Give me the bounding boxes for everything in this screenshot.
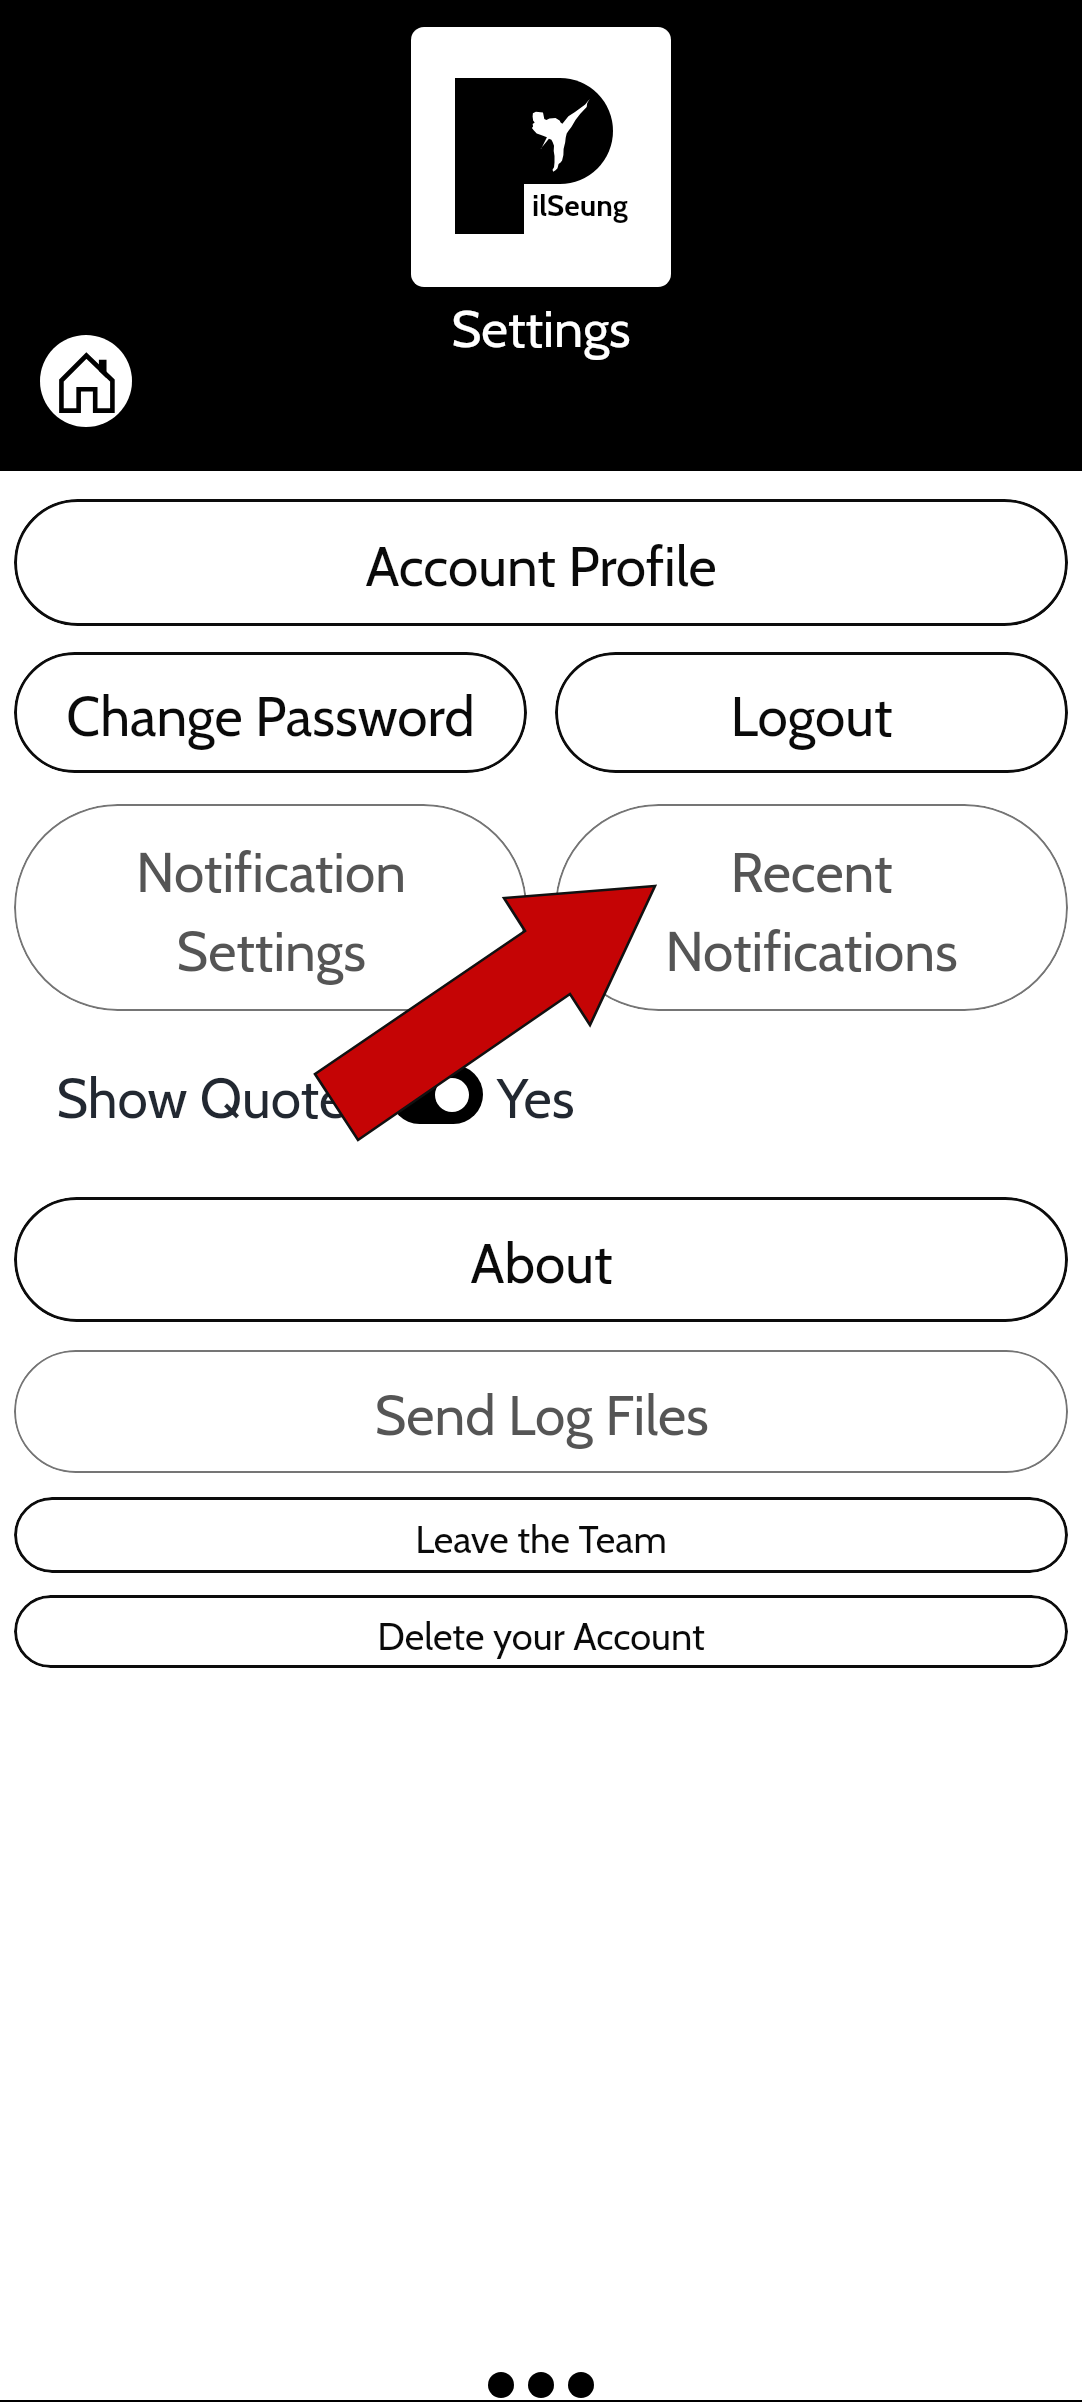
staticText: Change Password xyxy=(66,683,475,750)
staticText: Recent Notifications xyxy=(665,839,958,985)
staticText: Settings xyxy=(451,297,631,360)
staticText: Logout xyxy=(730,683,893,750)
button[interactable]: Show Quote toggle xyxy=(390,1065,483,1124)
button[interactable]: Home xyxy=(40,335,132,427)
staticText: Yes xyxy=(497,1065,575,1132)
staticText: Delete your Account xyxy=(377,1613,705,1659)
button[interactable]: About xyxy=(14,1197,1068,1322)
staticText: Leave the Team xyxy=(415,1516,667,1562)
button[interactable]: Notification Settings xyxy=(14,804,527,1011)
button[interactable]: Leave the Team xyxy=(14,1497,1068,1573)
staticText: Send Log Files xyxy=(374,1382,709,1449)
staticText: Notification Settings xyxy=(136,839,406,985)
staticText: Account Profile xyxy=(365,533,717,600)
button[interactable]: Send Log Files xyxy=(14,1350,1068,1473)
staticText: About xyxy=(470,1230,613,1297)
staticText: ilSeung xyxy=(532,187,628,223)
button[interactable]: Logout xyxy=(555,652,1068,773)
staticText: Show Quote xyxy=(56,1065,348,1132)
button[interactable]: Change Password xyxy=(14,652,527,773)
button[interactable]: Recent Notifications xyxy=(555,804,1068,1011)
button[interactable]: Delete your Account xyxy=(14,1595,1068,1668)
button[interactable]: Account Profile xyxy=(14,499,1068,626)
